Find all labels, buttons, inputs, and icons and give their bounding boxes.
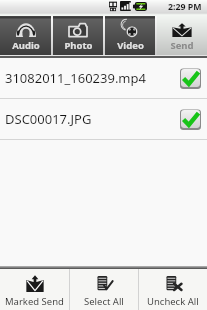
staticText: Audio (12, 39, 40, 52)
staticText: Select All (84, 295, 124, 308)
button[interactable]: Uncheck All (139, 269, 207, 310)
button[interactable]: Select All (70, 269, 138, 310)
staticText: Uncheck All (147, 295, 199, 308)
staticText: 31082011_160239.mp4 (5, 69, 146, 87)
button[interactable]: Selected (180, 68, 201, 89)
staticText: DSC00017.JPG (5, 110, 92, 128)
staticText: Send (170, 39, 194, 52)
button[interactable]: Marked Send (0, 269, 69, 310)
button[interactable]: Send (157, 16, 207, 55)
button[interactable]: Audio (0, 16, 51, 55)
button[interactable]: Video (105, 16, 155, 55)
staticText: Marked Send (5, 295, 64, 308)
button[interactable]: DSC00017.JPG (0, 99, 207, 139)
button[interactable]: Photo (53, 16, 103, 55)
button[interactable]: Selected (180, 109, 201, 130)
staticText: Video (117, 39, 144, 52)
staticText: 2:29 PM (168, 1, 202, 13)
button[interactable]: 31082011_160239.mp4 (0, 58, 207, 98)
staticText: Photo (64, 39, 93, 52)
